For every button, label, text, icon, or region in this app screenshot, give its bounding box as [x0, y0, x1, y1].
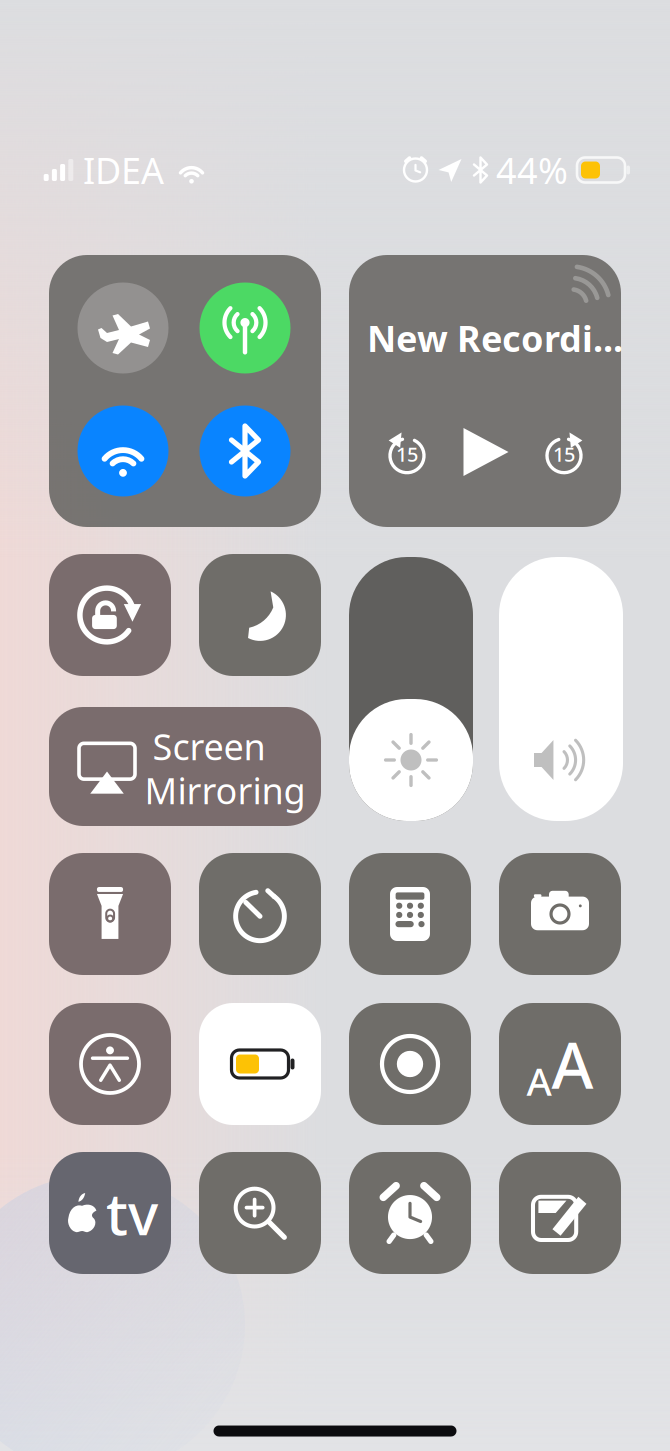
- button[interactable]: Focus: [199, 554, 321, 676]
- button[interactable]: Skip back 15 seconds: [384, 429, 430, 475]
- staticText: tv: [106, 1175, 158, 1251]
- staticText: 15: [396, 441, 418, 467]
- button[interactable]: Timer: [199, 853, 321, 975]
- button[interactable]: Rotation Lock: [49, 554, 171, 676]
- staticText: IDEA: [83, 146, 164, 194]
- button[interactable]: Magnifier: [199, 1152, 321, 1274]
- staticText: 44%: [496, 146, 568, 194]
- staticText: A: [526, 1055, 551, 1106]
- button[interactable]: Alarm: [349, 1152, 471, 1274]
- staticText: Mirroring: [144, 766, 305, 814]
- button[interactable]: Play: [463, 428, 508, 476]
- button[interactable]: Calculator: [349, 853, 471, 975]
- button[interactable]: Volume: [499, 557, 623, 821]
- button[interactable]: Accessibility: [49, 1003, 171, 1125]
- button[interactable]: Screen Recording: [349, 1003, 471, 1125]
- button[interactable]: Notes: [499, 1152, 621, 1274]
- button[interactable]: Camera: [499, 853, 621, 975]
- button[interactable]: Flashlight: [49, 853, 171, 975]
- button[interactable]: Wi-Fi: [77, 405, 168, 496]
- staticText: A: [551, 1021, 593, 1106]
- button[interactable]: Bluetooth: [199, 405, 290, 496]
- staticText: New Recordi...: [367, 314, 623, 362]
- button[interactable]: Low Power Mode: [199, 1003, 321, 1125]
- staticText: 15: [553, 441, 575, 467]
- button[interactable]: Brightness: [349, 557, 473, 821]
- button[interactable]: Cellular Data: [199, 282, 290, 373]
- button[interactable]: Screen: [49, 707, 321, 826]
- button[interactable]: Skip forward 15 seconds: [541, 429, 587, 475]
- button[interactable]: Apple TV Remote: [49, 1152, 171, 1274]
- button[interactable]: Airplane Mode: [77, 282, 168, 373]
- button[interactable]: Text Size: [499, 1003, 621, 1125]
- staticText: Screen: [152, 722, 265, 770]
